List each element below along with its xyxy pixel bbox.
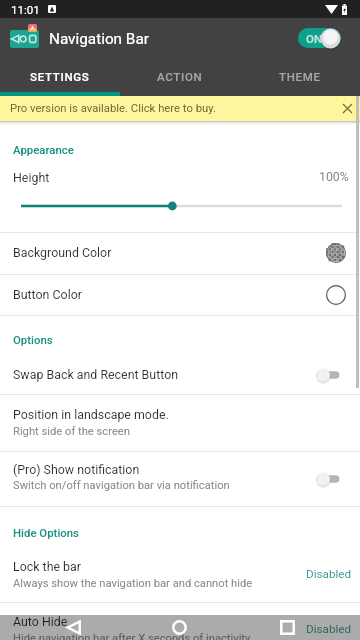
staticText: Navigation Bar <box>49 30 149 48</box>
button[interactable]: SETTINGS <box>0 60 120 96</box>
staticText: Right side of the screen <box>13 425 130 438</box>
staticText: THEME <box>279 70 321 83</box>
staticText: ON <box>306 32 323 45</box>
button[interactable]: Swap Back and Recent Button <box>0 355 360 394</box>
button[interactable]: Recent apps <box>280 620 295 635</box>
staticText: 11:01 <box>11 3 40 17</box>
button[interactable]: Lock the bar <box>0 548 360 601</box>
staticText: Background Color <box>13 245 112 260</box>
staticText: SETTINGS <box>30 70 90 83</box>
staticText: 100% <box>319 170 349 184</box>
button[interactable]: Home <box>172 620 187 635</box>
staticText: (Pro) Show notification <box>13 462 140 477</box>
button[interactable]: Background Color <box>0 233 360 273</box>
staticText: Always show the navigation bar and canno… <box>13 577 253 590</box>
button[interactable]: Position in landscape mode. <box>0 395 360 450</box>
staticText: Options <box>13 333 53 346</box>
staticText: Hide Options <box>13 526 79 539</box>
staticText: Auto Hide <box>13 614 68 629</box>
button[interactable]: ON <box>298 28 341 48</box>
staticText: Swap Back and Recent Button <box>13 367 179 382</box>
staticText: Disabled <box>306 567 352 581</box>
button[interactable]: Height <box>0 122 360 232</box>
staticText: Lock the bar <box>13 559 81 574</box>
button[interactable]: Button Color <box>0 275 360 315</box>
staticText: ACTION <box>157 70 203 83</box>
staticText: Appearance <box>13 143 74 156</box>
staticText: Height <box>13 170 50 185</box>
button[interactable]: Back <box>65 620 81 635</box>
button[interactable]: Pro version is available. Click here to … <box>0 96 360 121</box>
button[interactable]: (Pro) Show notification <box>0 452 360 506</box>
button[interactable]: THEME <box>240 60 360 96</box>
button[interactable]: ACTION <box>120 60 240 96</box>
staticText: Position in landscape mode. <box>13 407 169 422</box>
button[interactable]: Dismiss <box>334 96 360 121</box>
staticText: Hide navigation bar after X seconds of i… <box>13 632 251 640</box>
staticText: Pro version is available. Click here to … <box>10 102 216 115</box>
staticText: Switch on/off navigation bar via notific… <box>13 479 230 492</box>
staticText: Disabled <box>306 622 352 636</box>
staticText: Button Color <box>13 287 82 302</box>
button[interactable]: Auto Hide <box>0 603 360 640</box>
